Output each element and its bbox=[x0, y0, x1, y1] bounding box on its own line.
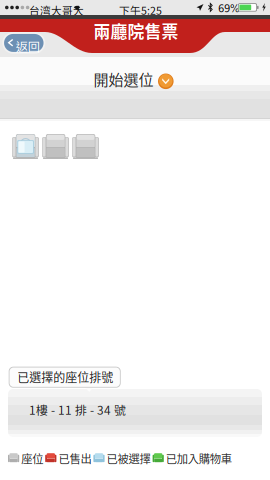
staticText: 1樓 - 11 排 - 34 號 bbox=[29, 401, 126, 418]
staticText: 已售出 bbox=[58, 450, 91, 466]
staticText: 座位 bbox=[21, 450, 43, 466]
button[interactable]: 返回 bbox=[2, 32, 45, 54]
staticText: 開始選位 bbox=[93, 68, 153, 90]
staticText: 已選擇的座位排號 bbox=[17, 368, 113, 386]
staticText: 台湾大哥大 bbox=[29, 2, 84, 18]
staticText: 已被選擇 bbox=[107, 450, 151, 466]
button[interactable]: 開始選位 bbox=[93, 68, 179, 94]
staticText: 下午5:25 bbox=[119, 2, 162, 18]
staticText: 已加入購物車 bbox=[166, 450, 232, 466]
staticText: 兩廳院售票 bbox=[93, 18, 178, 43]
staticText: 返回 bbox=[16, 37, 40, 55]
staticText: 69% bbox=[218, 3, 240, 15]
